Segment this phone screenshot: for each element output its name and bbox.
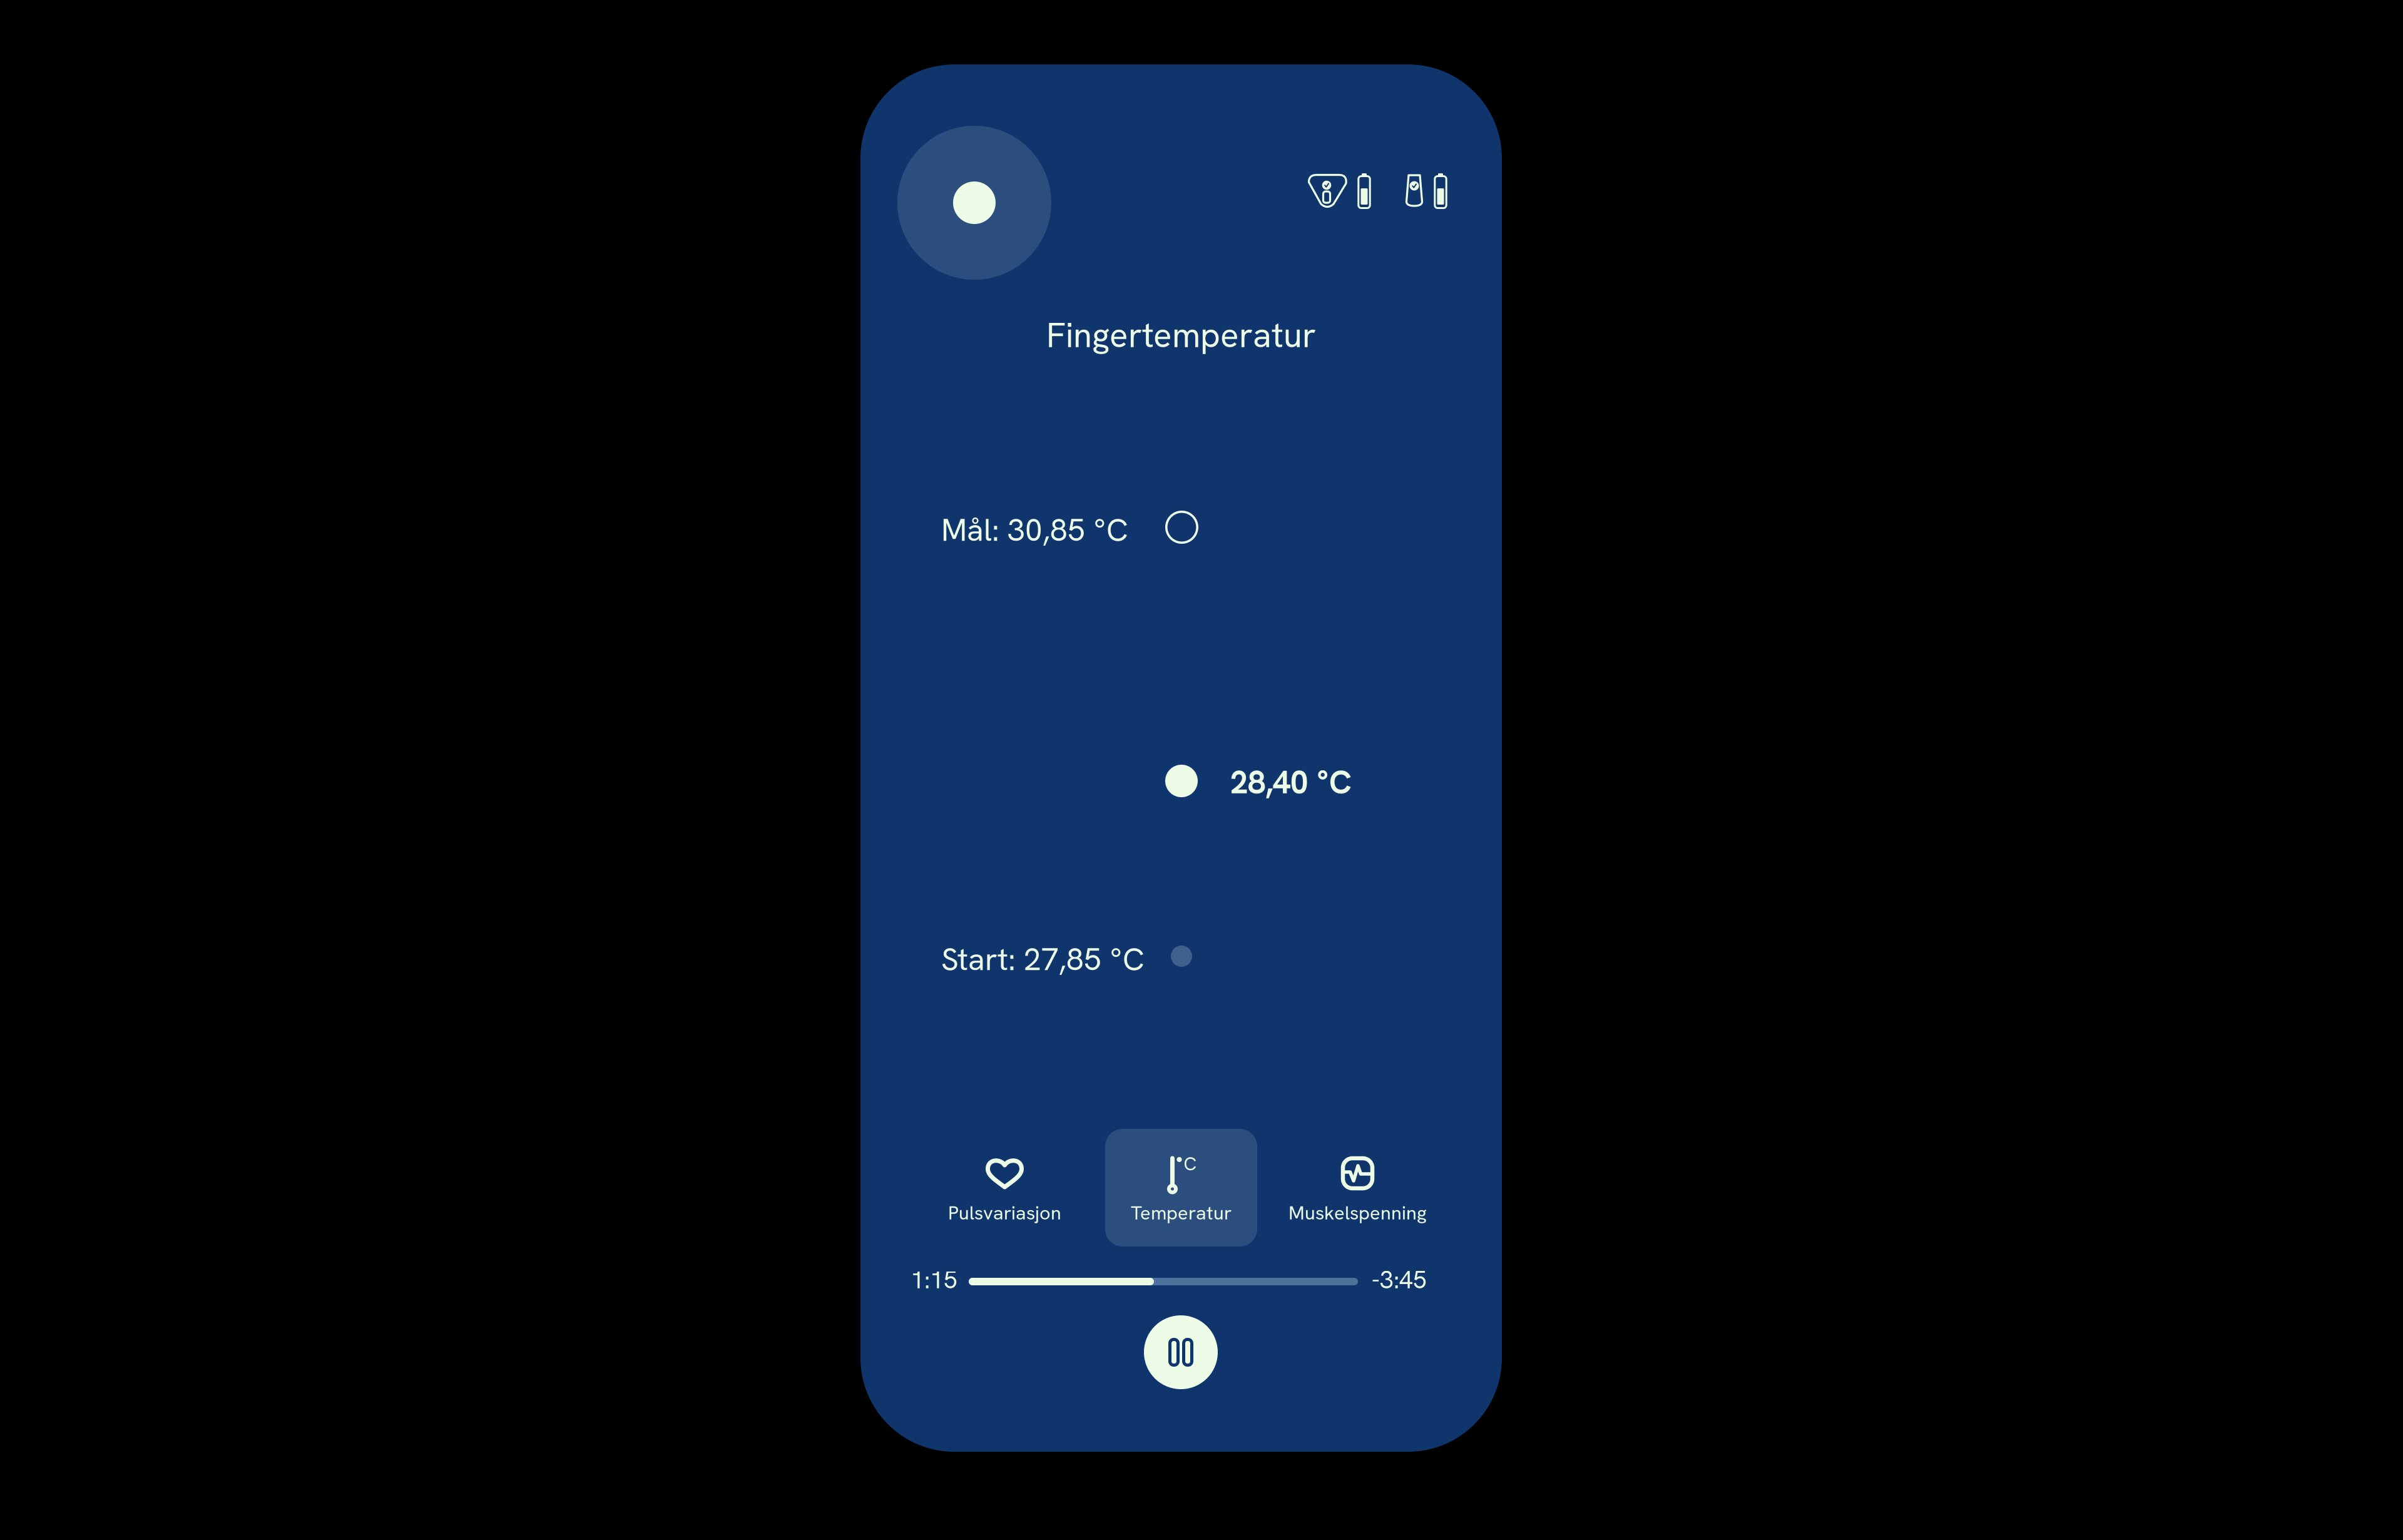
staticText: C [1184,1152,1197,1176]
button[interactable]: Pulsvariasjon [916,1129,1093,1247]
staticText: 1:15 [911,1264,957,1296]
staticText: Mål: 30,85 °C [941,510,1128,550]
staticText: Temperatur [1131,1200,1232,1225]
button[interactable]: Ringsensor tilkoblet, batteri [1307,173,1371,210]
button[interactable]: C [1093,1129,1269,1247]
staticText: Muskelspenning [1288,1200,1427,1225]
button[interactable]: Pause [1144,1315,1218,1389]
button[interactable]: Klipssensor tilkoblet, batteri [1406,173,1447,210]
button[interactable]: Muskelspenning [1269,1129,1446,1247]
staticText: Start: 27,85 °C [941,939,1145,980]
staticText: Fingertemperatur [1046,313,1316,357]
staticText: -3:45 [1372,1264,1427,1296]
staticText: 28,40 °C [1230,762,1352,803]
staticText: Pulsvariasjon [948,1200,1061,1225]
